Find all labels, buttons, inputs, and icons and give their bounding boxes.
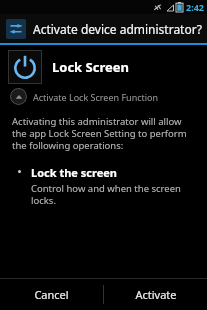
staticText: Lock Screen	[52, 58, 129, 76]
staticText: Cancel	[34, 287, 69, 302]
button[interactable]: Cancel	[0, 279, 103, 310]
button[interactable]: Activate	[104, 279, 207, 310]
staticText: Activate device administrator?	[33, 21, 202, 37]
staticText: Lock the screen	[31, 165, 117, 180]
staticText: Activate Lock Screen Function	[33, 91, 159, 103]
staticText: 2:42	[186, 1, 204, 13]
staticText: Activate	[135, 287, 177, 302]
staticText: Control how and when the screen locks.	[31, 182, 195, 207]
staticText: Activating this administrator will allow…	[12, 115, 195, 152]
